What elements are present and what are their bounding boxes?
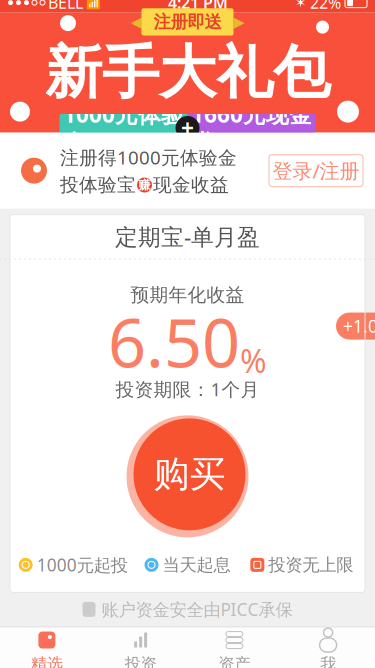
staticText: 投资无上限: [268, 554, 353, 575]
staticText: BELL: [48, 0, 83, 13]
staticText: 我: [320, 654, 336, 668]
staticText: 投资: [125, 654, 157, 668]
staticText: %: [240, 339, 267, 382]
staticText: 当天起息: [162, 554, 230, 575]
button[interactable]: 投资: [94, 627, 188, 668]
staticText: 22%: [310, 0, 341, 13]
staticText: +1.00%: [343, 315, 375, 338]
staticText: 1000元起投: [37, 553, 128, 576]
button[interactable]: 我: [281, 627, 375, 668]
button[interactable]: 登录/注册: [269, 155, 363, 187]
staticText: 赚: [138, 178, 150, 192]
staticText: 预期年化收益: [130, 284, 244, 306]
button[interactable]: 精选: [0, 627, 94, 668]
staticText: ✶: [295, 0, 306, 10]
staticText: 注册即送: [153, 11, 221, 33]
staticText: 注册得1000元体验金: [60, 145, 237, 170]
staticText: 📶: [86, 0, 101, 9]
staticText: 4:21 PM: [168, 0, 228, 13]
staticText: 定期宝-单月盈: [115, 222, 260, 252]
staticText: 投资期限：1个月: [115, 377, 259, 401]
staticText: 新手大礼包: [45, 38, 330, 108]
staticText: 资产: [218, 654, 250, 668]
staticText: 登录/注册: [272, 157, 359, 184]
staticText: ▶: [233, 14, 244, 30]
staticText: 现金收益: [153, 174, 229, 196]
staticText: +: [181, 113, 194, 143]
staticText: 精选: [31, 654, 63, 668]
staticText: 1660元现金券: [191, 99, 312, 157]
staticText: 6.50: [108, 297, 240, 386]
staticText: 投体验宝: [60, 174, 136, 196]
staticText: ◀: [130, 14, 141, 30]
staticText: 购买: [153, 452, 225, 496]
button[interactable]: 资产: [187, 627, 281, 668]
staticText: 1000元体验金: [63, 99, 184, 157]
staticText: 账户资金安全由PICC承保: [101, 598, 292, 621]
button[interactable]: 购买: [122, 413, 252, 539]
